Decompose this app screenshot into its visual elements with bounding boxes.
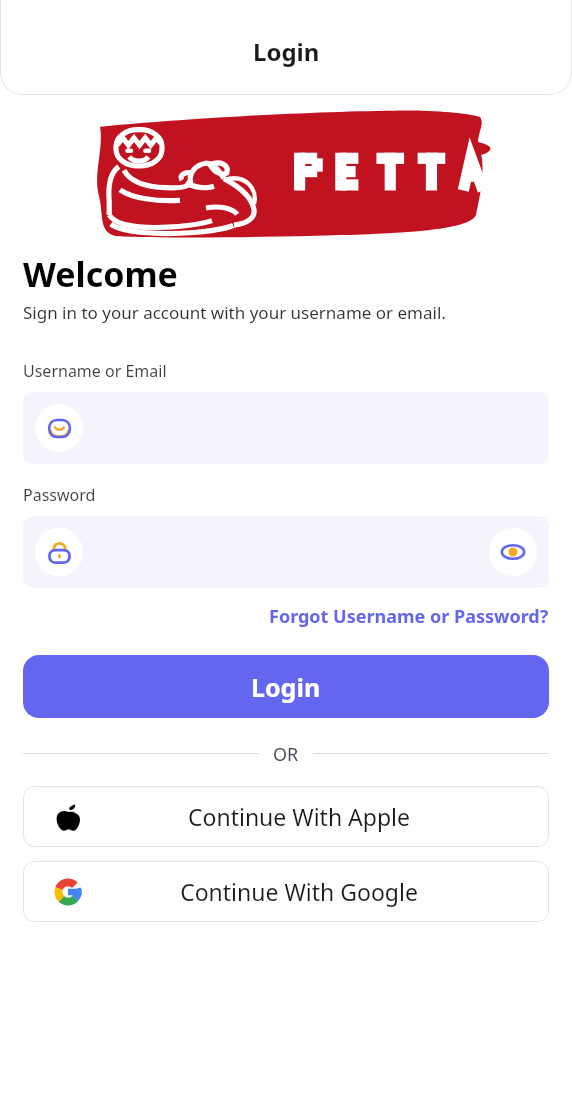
staticText: Forgot Username or Password? bbox=[269, 604, 549, 629]
staticText: Continue With Apple bbox=[188, 801, 410, 832]
staticText: Continue With Google bbox=[180, 876, 418, 907]
button[interactable]: Forgot Username or Password? bbox=[269, 604, 549, 629]
staticText: OR bbox=[273, 742, 299, 764]
staticText: Sign in to your account with your userna… bbox=[23, 301, 446, 324]
button[interactable]: Continue With Google bbox=[23, 861, 549, 922]
staticText: Username or Email bbox=[23, 360, 167, 382]
staticText: Password bbox=[23, 484, 96, 506]
button[interactable]: Show password bbox=[23, 516, 549, 588]
button[interactable]: Continue With Apple bbox=[23, 786, 549, 847]
button[interactable]: Login bbox=[23, 655, 549, 718]
button[interactable]: Show password bbox=[489, 528, 537, 576]
staticText: Login bbox=[251, 670, 321, 704]
staticText: Welcome bbox=[23, 251, 178, 297]
button[interactable] bbox=[23, 392, 549, 464]
staticText: Login bbox=[253, 35, 320, 68]
